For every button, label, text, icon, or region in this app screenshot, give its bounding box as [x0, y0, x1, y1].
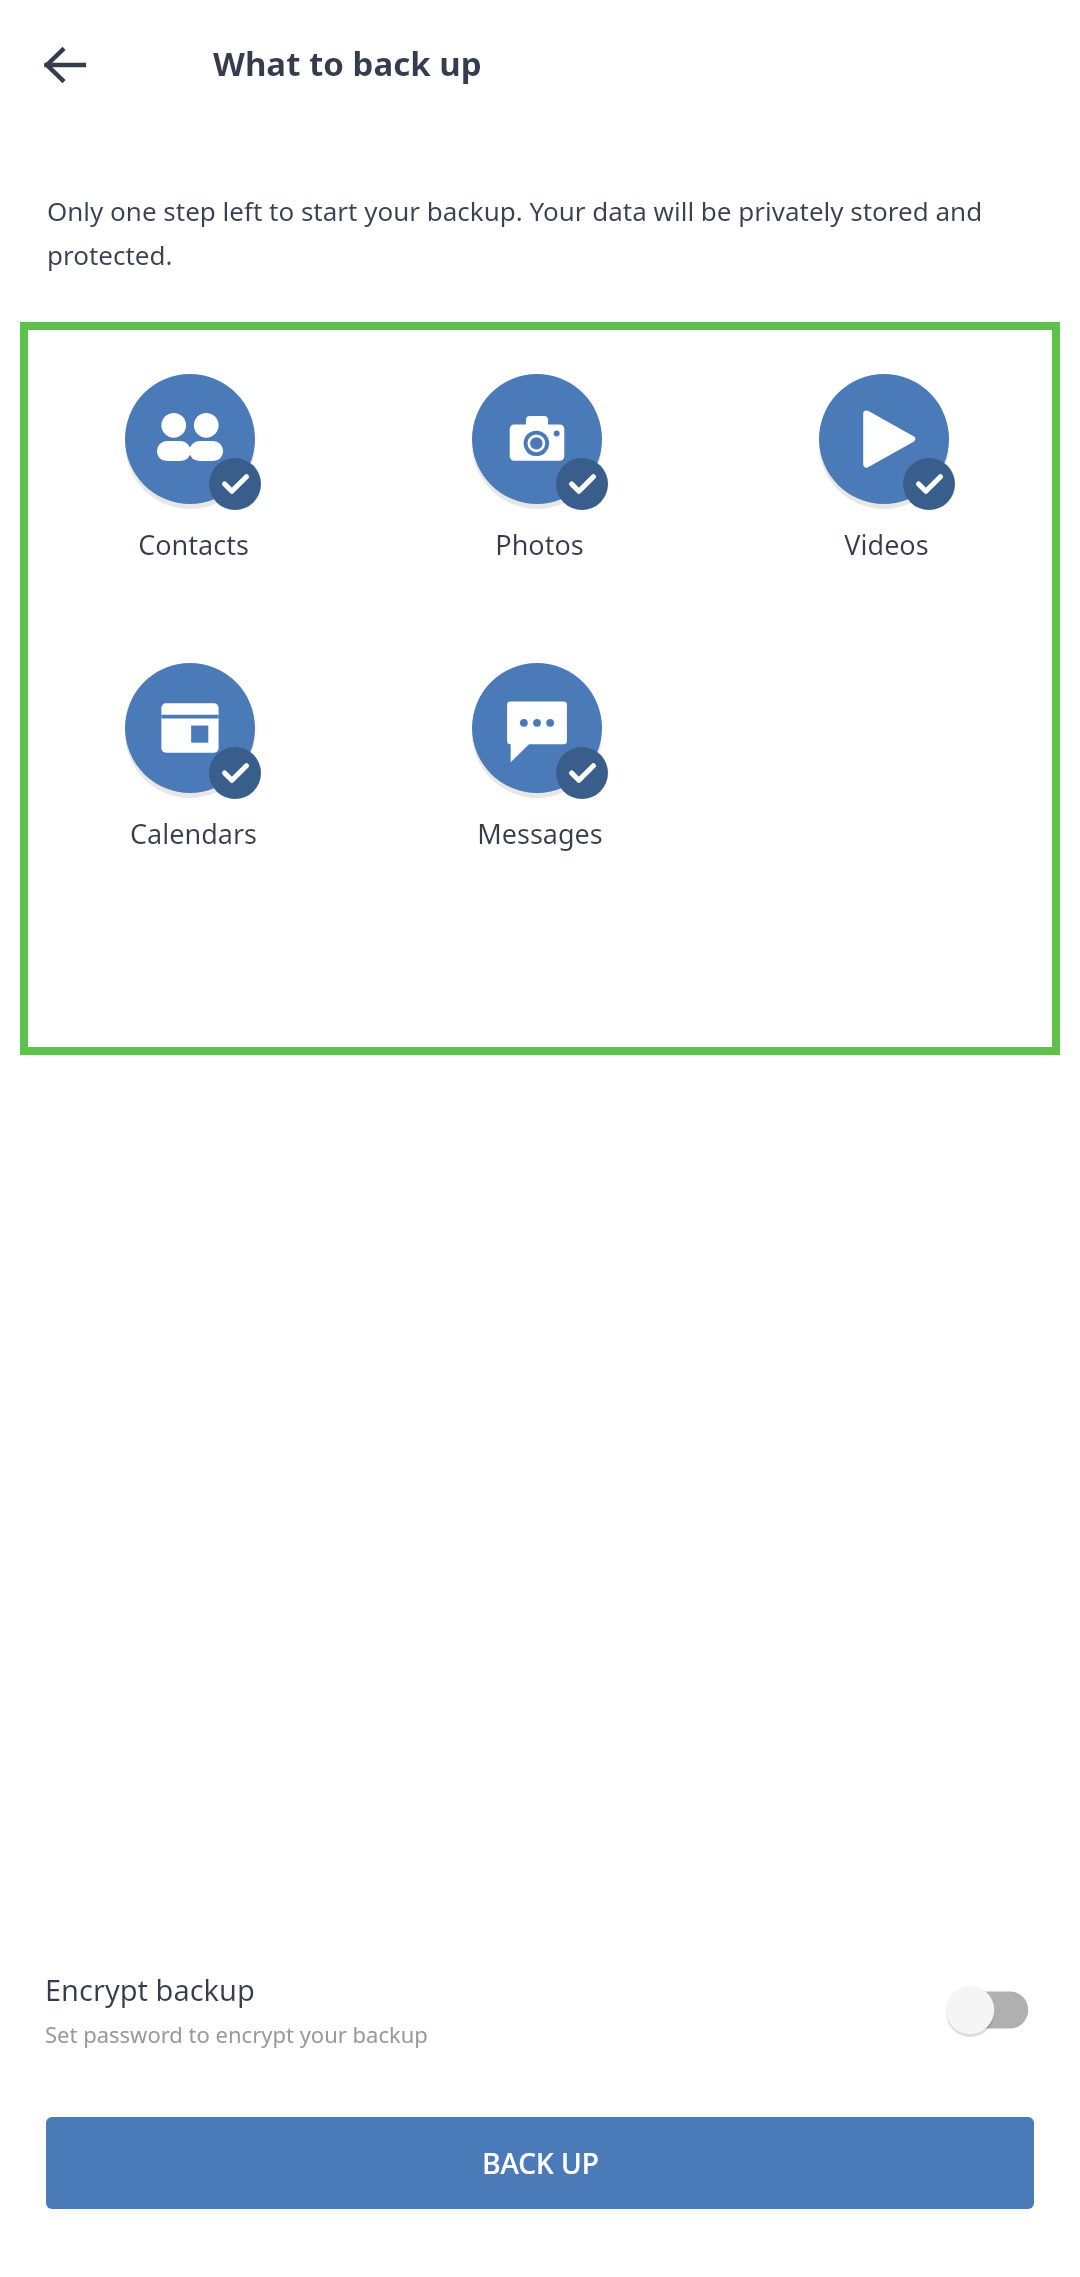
button[interactable]: Contacts [20, 370, 366, 567]
staticText: Contacts [138, 526, 249, 563]
staticText: Photos [495, 526, 584, 563]
button[interactable]: Calendars [20, 659, 366, 856]
staticText: BACK UP [482, 2144, 599, 2182]
button[interactable]: Messages [366, 659, 713, 856]
button[interactable]: BACK UP [46, 2117, 1034, 2209]
staticText: What to back up [213, 41, 482, 86]
staticText: Messages [477, 815, 603, 852]
button[interactable]: Videos [713, 370, 1060, 567]
staticText: Calendars [130, 815, 257, 852]
button[interactable]: Back [34, 34, 96, 96]
staticText: Only one step left to start your backup.… [47, 193, 1040, 272]
button[interactable]: Encrypt backup toggle [939, 1980, 1035, 2040]
staticText: Set password to encrypt your backup [45, 2019, 428, 2049]
staticText: Encrypt backup [45, 1970, 255, 2009]
button[interactable]: Photos [366, 370, 713, 567]
button[interactable]: Encrypt backup [0, 1954, 1080, 2065]
staticText: Videos [844, 526, 929, 563]
